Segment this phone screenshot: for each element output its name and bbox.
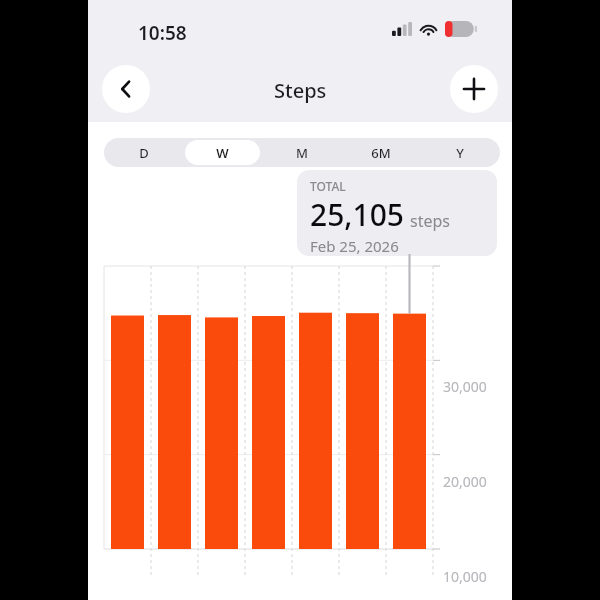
button[interactable]: D	[104, 138, 183, 167]
staticText: M	[296, 144, 308, 162]
button[interactable]: 6M	[341, 138, 420, 167]
button[interactable]: W	[183, 138, 262, 167]
staticText: Y	[456, 144, 464, 162]
staticText: 25,105	[310, 194, 404, 235]
staticText: TOTAL	[310, 178, 346, 194]
staticText: 20,000	[443, 472, 487, 491]
staticText: steps	[410, 210, 450, 232]
staticText: D	[139, 144, 149, 162]
button[interactable]: Add	[450, 65, 498, 113]
button[interactable]: Back	[102, 65, 150, 113]
button[interactable]: M	[262, 138, 341, 167]
staticText: Steps	[274, 77, 327, 104]
button[interactable]: TOTAL	[297, 170, 497, 256]
staticText: 10:58	[138, 20, 187, 46]
staticText: 30,000	[443, 377, 487, 396]
staticText: Feb 25, 2026	[310, 236, 399, 256]
button[interactable]: Y	[420, 138, 499, 167]
staticText: 10,000	[443, 567, 487, 586]
staticText: 6M	[371, 144, 391, 162]
staticText: W	[216, 144, 229, 162]
